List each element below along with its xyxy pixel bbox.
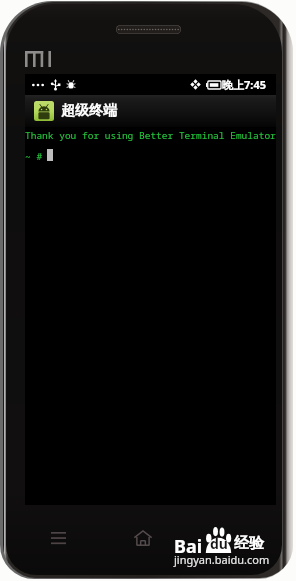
button[interactable]: Home bbox=[129, 525, 157, 551]
staticText: 晚上7:45 bbox=[222, 77, 266, 92]
staticText: 经验 bbox=[234, 534, 264, 553]
staticText: du bbox=[210, 534, 228, 553]
button[interactable]: Back bbox=[214, 525, 242, 551]
staticText: 超级终端 bbox=[61, 102, 117, 120]
staticText: Thank you for using Better Terminal Emul… bbox=[25, 129, 276, 142]
button[interactable]: Menu bbox=[44, 525, 72, 551]
staticText: Bai bbox=[174, 534, 203, 559]
staticText: jingyan.baidu.com bbox=[174, 552, 270, 567]
staticText: ~ # bbox=[25, 150, 43, 163]
